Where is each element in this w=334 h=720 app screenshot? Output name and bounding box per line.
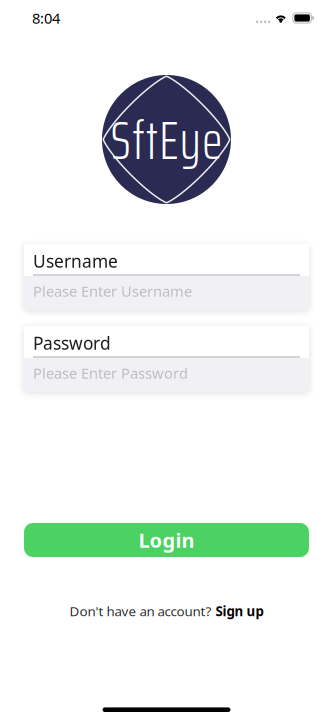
button[interactable]: Login (24, 523, 309, 557)
staticText: SftEye (111, 98, 222, 182)
staticText: Login (138, 527, 194, 553)
staticText: Don't have an account? (69, 602, 211, 620)
staticText: Please Enter Username (33, 281, 192, 301)
button[interactable]: Don't have an account? (69, 602, 263, 620)
staticText: 8:04 (32, 8, 60, 28)
staticText: Please Enter Password (33, 363, 188, 383)
staticText: Sign up (215, 602, 263, 620)
staticText: Password (33, 331, 111, 354)
staticText: Username (33, 249, 118, 272)
